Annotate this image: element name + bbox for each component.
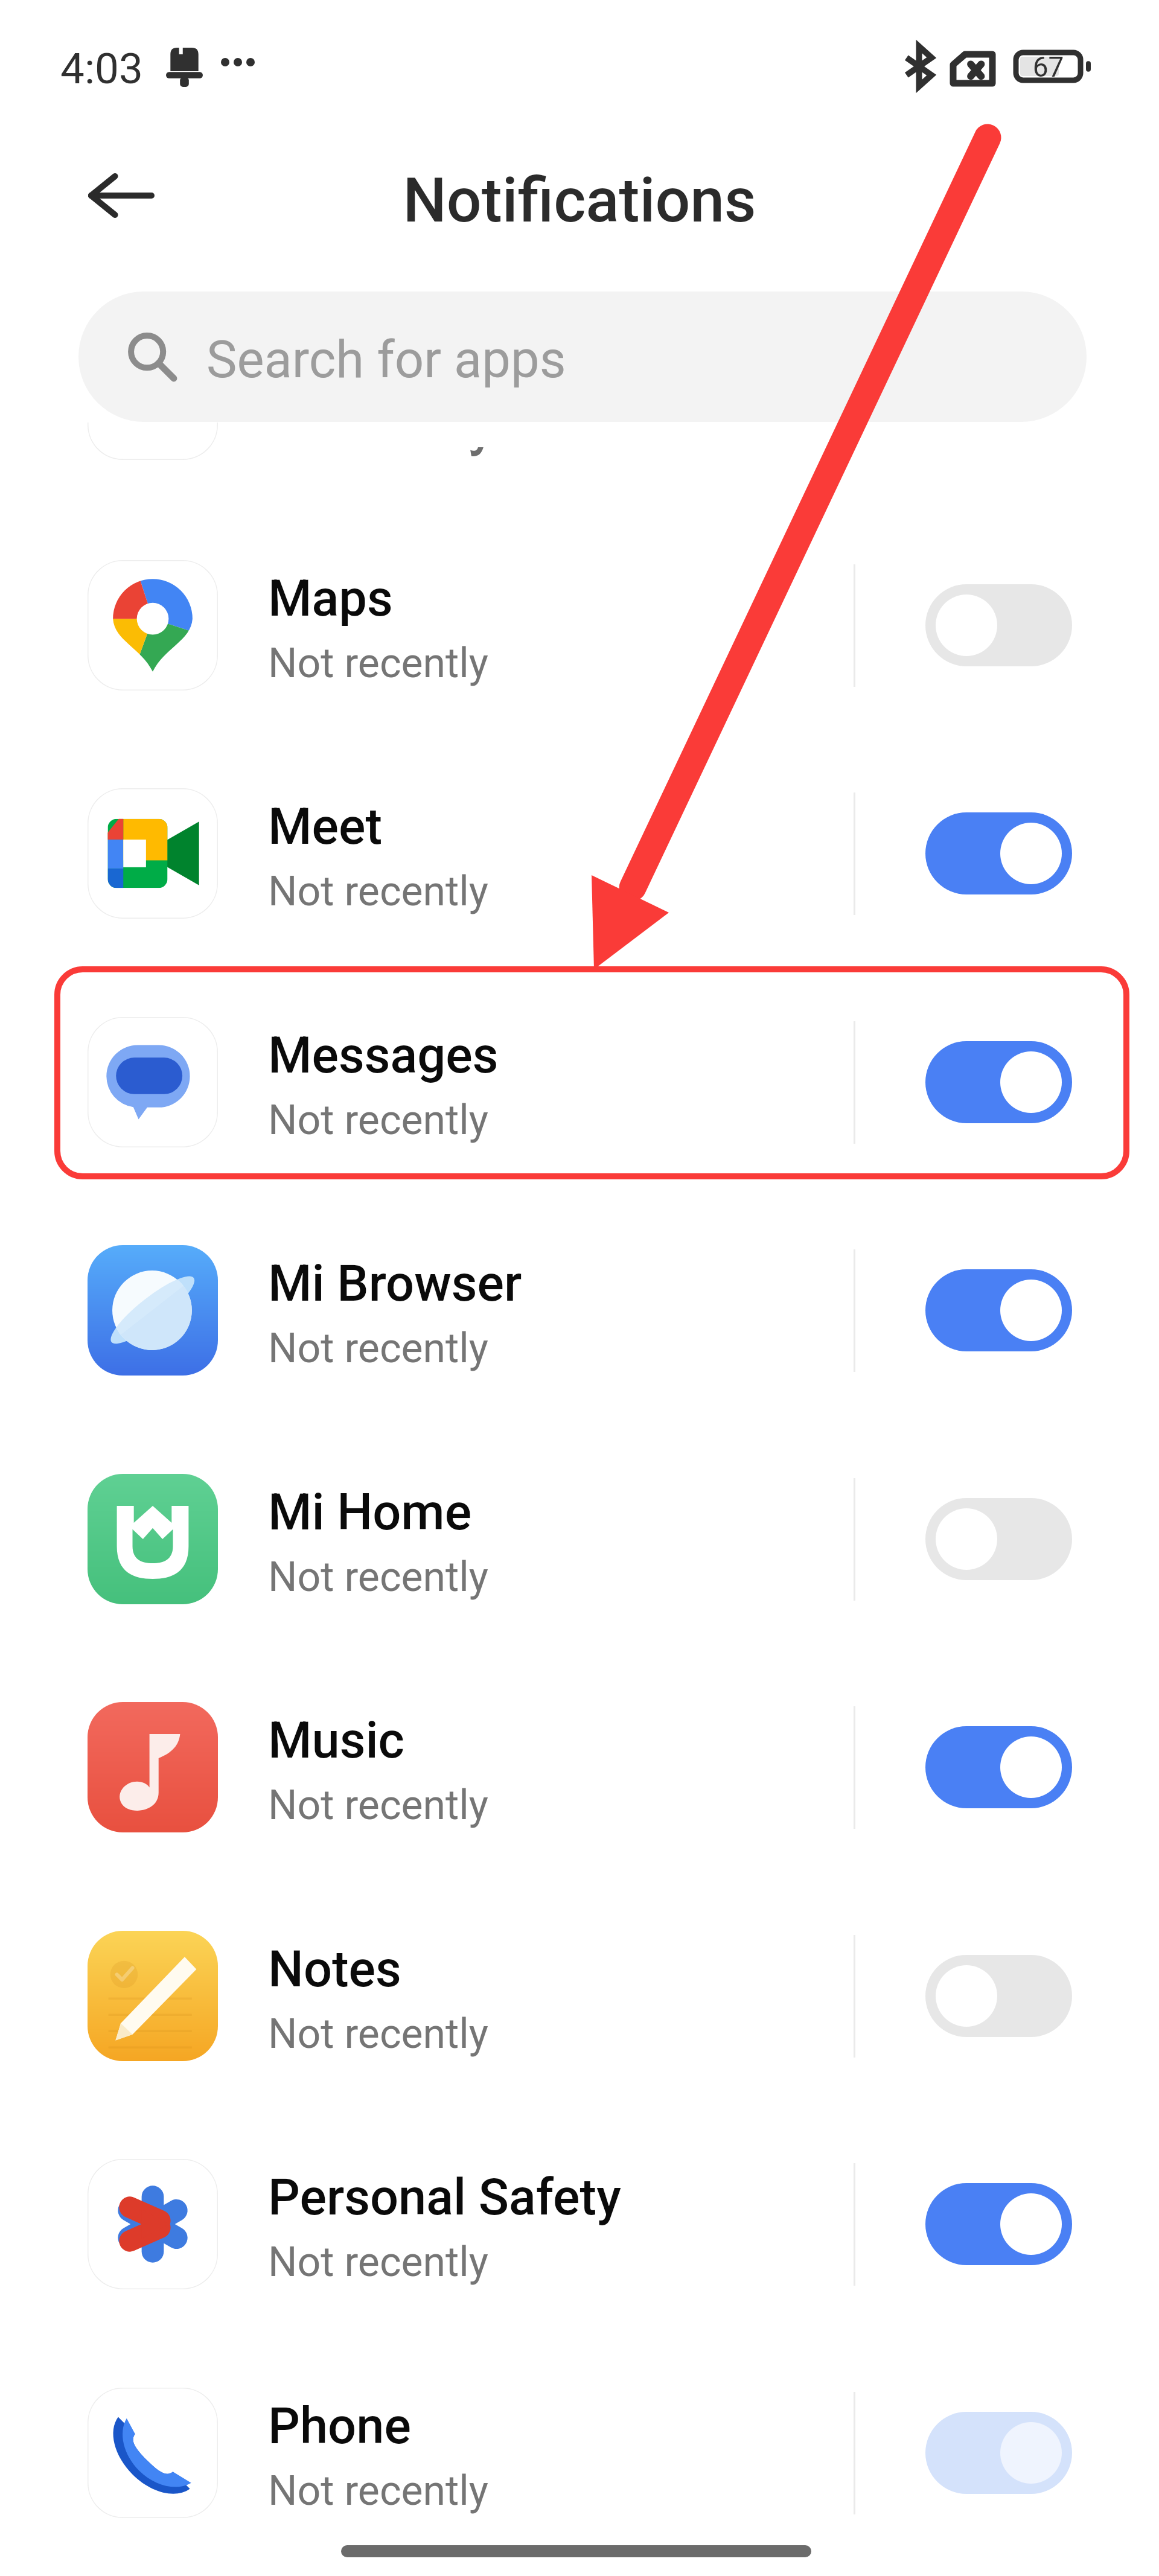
staticText: Mi Home (268, 1483, 472, 1541)
staticText: Maps (268, 569, 393, 628)
button[interactable]: Toggle notifications for Notes (925, 1955, 1072, 2037)
button[interactable]: Messages (0, 968, 1159, 1197)
staticText: Messages (268, 1026, 499, 1085)
button[interactable]: Toggle notifications for Messages (925, 1041, 1072, 1123)
button[interactable]: Toggle notifications for Meet (925, 812, 1072, 894)
staticText: Not recently (268, 2238, 489, 2286)
staticText: Meet (268, 797, 383, 856)
button[interactable]: Toggle notifications for Personal Safety (925, 2183, 1072, 2265)
button[interactable]: Phone (0, 2339, 1159, 2568)
button[interactable]: Toggle notifications for Mi Home (925, 1498, 1072, 1580)
staticText: Not recently (268, 639, 489, 687)
button[interactable]: Toggle notifications for Music (925, 1726, 1072, 1808)
button[interactable]: Personal Safety (0, 2110, 1159, 2339)
button[interactable]: Back (75, 151, 165, 240)
button[interactable]: Music (0, 1653, 1159, 1882)
staticText: Not recently (268, 1324, 489, 1372)
staticText: Search for apps (206, 330, 566, 390)
button[interactable]: Mi Browser (0, 1196, 1159, 1425)
staticText: Not recently (268, 1553, 489, 1601)
staticText: Not recently (268, 2467, 489, 2515)
staticText: Notifications (0, 164, 1159, 237)
staticText: Phone (268, 2397, 411, 2455)
staticText: Notes (268, 1940, 401, 1998)
button[interactable]: Notes (0, 1882, 1159, 2111)
staticText: Not recently (268, 867, 489, 916)
staticText: 4:03 (60, 43, 143, 94)
staticText: Not recently (268, 1781, 489, 1829)
button[interactable]: Toggle notifications for Maps (925, 584, 1072, 666)
staticText: 67 (1016, 51, 1081, 83)
staticText: Not recently (268, 1096, 489, 1144)
button[interactable]: Toggle notifications for Mi Browser (925, 1269, 1072, 1351)
button[interactable]: Mi Home (0, 1425, 1159, 1654)
button[interactable]: Meet (0, 739, 1159, 968)
button[interactable]: Search for apps (78, 292, 1087, 422)
button[interactable]: Toggle notifications for Phone (925, 2412, 1072, 2494)
staticText: Personal Safety (268, 2168, 621, 2227)
staticText: Mi Browser (268, 1254, 522, 1313)
button[interactable]: Maps (0, 511, 1159, 740)
staticText: Not recently (268, 2010, 489, 2058)
staticText: Music (268, 1711, 404, 1770)
